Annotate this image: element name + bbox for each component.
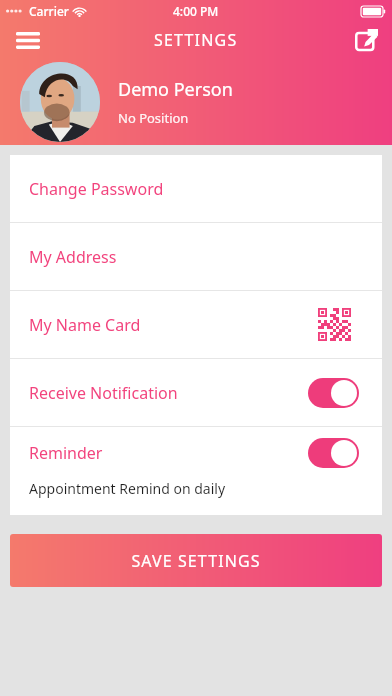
staticText: Carrier [29, 3, 69, 19]
staticText: Demo Person [118, 77, 233, 102]
staticText: My Address [29, 246, 117, 268]
staticText: SETTINGS [154, 29, 238, 51]
staticText: Reminder [29, 442, 103, 464]
button[interactable]: Receive Notification [10, 359, 382, 426]
button[interactable]: Toggle [308, 378, 359, 408]
button[interactable]: My Address [10, 223, 382, 290]
staticText: SAVE SETTINGS [131, 550, 261, 572]
staticText: 4:00 PM [173, 3, 219, 19]
button[interactable]: My Name Card [10, 291, 382, 358]
button[interactable]: SAVE SETTINGS [10, 534, 382, 587]
staticText: No Position [118, 109, 189, 127]
button[interactable]: Profile photo [20, 62, 100, 142]
staticText: Appointment Remind on daily [29, 479, 226, 498]
button[interactable]: Toggle [308, 438, 359, 468]
button[interactable]: Reminder [10, 427, 382, 515]
button[interactable]: Menu [8, 22, 48, 58]
button[interactable]: Change Password [10, 155, 382, 222]
staticText: Change Password [29, 178, 164, 200]
button[interactable]: Edit [346, 22, 386, 58]
staticText: Receive Notification [29, 382, 178, 404]
staticText: My Name Card [29, 314, 141, 336]
